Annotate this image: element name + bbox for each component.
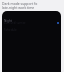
staticText: Schedule xyxy=(4,28,17,32)
staticText: Night xyxy=(4,19,12,23)
staticText: Dark mode support fo xyxy=(2,1,38,6)
button[interactable]: Night xyxy=(2,19,61,27)
staticText: Auto until sunrise xyxy=(4,21,26,25)
staticText: late-night work time xyxy=(2,5,35,10)
